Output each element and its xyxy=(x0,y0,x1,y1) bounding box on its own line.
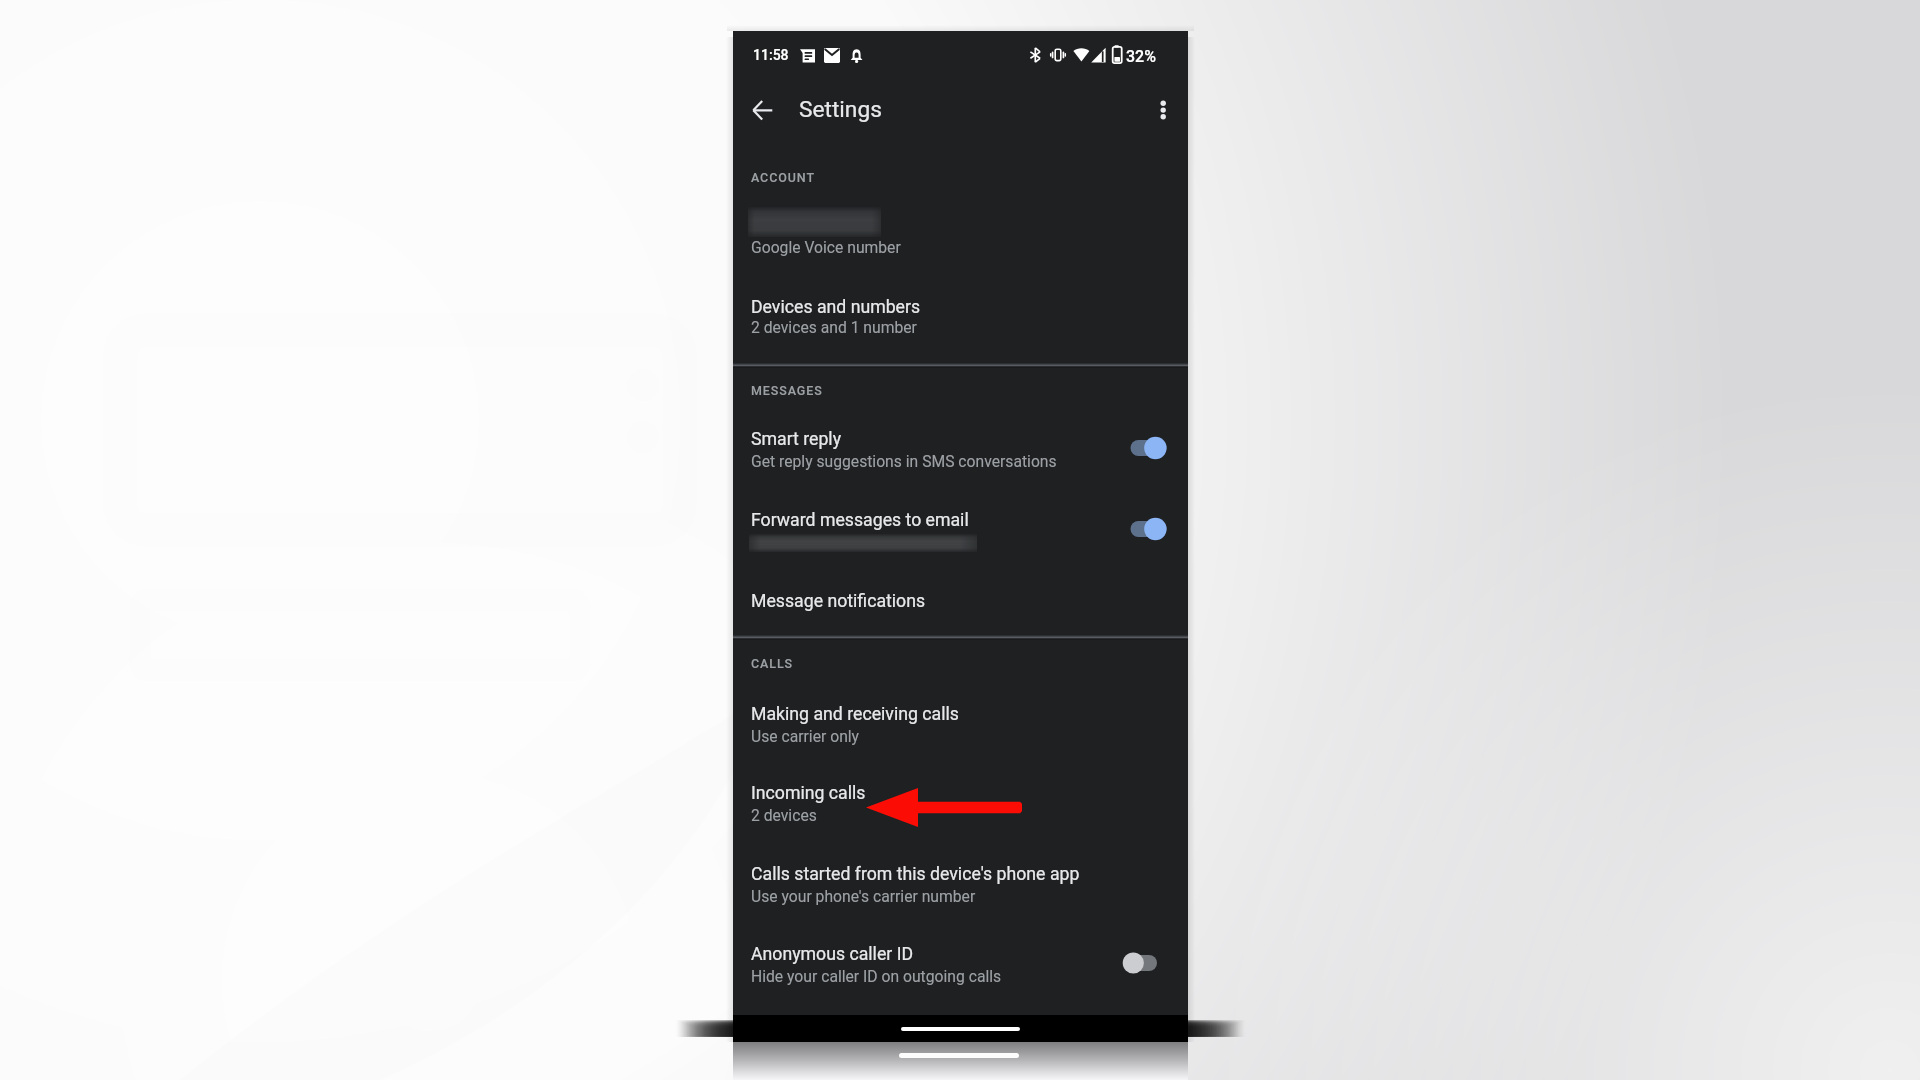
button[interactable]: Forward messages to email xyxy=(733,501,1188,561)
staticText: Devices and numbers xyxy=(751,297,921,318)
staticText: Google Voice number xyxy=(751,238,901,256)
button[interactable]: Message notifications xyxy=(733,582,1188,624)
staticText: 32% xyxy=(1126,47,1156,66)
staticText: Message notifications xyxy=(751,591,926,612)
staticText: Hide your caller ID on outgoing calls xyxy=(751,967,1002,985)
staticText: ACCOUNT xyxy=(751,170,815,185)
staticText: Incoming calls xyxy=(751,783,866,804)
button[interactable]: Making and receiving calls xyxy=(733,695,1188,753)
staticText: MESSAGES xyxy=(751,383,823,398)
staticText: 11:58 xyxy=(753,47,789,63)
staticText: Calls started from this device's phone a… xyxy=(751,864,1080,885)
button[interactable]: Incoming calls xyxy=(733,774,1188,832)
button[interactable]: More options xyxy=(1139,87,1187,135)
button[interactable]: Toggle, off xyxy=(1118,947,1172,979)
staticText: Use carrier only xyxy=(751,727,860,745)
button[interactable]: Calls started from this device's phone a… xyxy=(733,855,1188,913)
staticText: Forward messages to email xyxy=(751,510,969,531)
button[interactable]: Anonymous caller ID xyxy=(733,935,1188,993)
staticText: Get reply suggestions in SMS conversatio… xyxy=(751,452,1057,470)
staticText: Smart reply xyxy=(751,429,842,450)
staticText: 2 devices and 1 number xyxy=(751,318,917,336)
staticText: 2 devices xyxy=(751,806,817,824)
button[interactable]: Google Voice number xyxy=(733,200,1188,262)
staticText: CALLS xyxy=(751,656,794,671)
button[interactable]: Toggle, on xyxy=(1118,432,1172,464)
staticText: Anonymous caller ID xyxy=(751,944,914,965)
staticText: Making and receiving calls xyxy=(751,704,959,725)
other: Annotation arrow pointing at Incoming ca… xyxy=(866,787,1022,828)
button[interactable]: Toggle, on xyxy=(1118,513,1172,545)
button[interactable]: Smart reply xyxy=(733,420,1188,480)
staticText: Settings xyxy=(799,96,882,123)
button[interactable]: Navigate up xyxy=(739,86,787,134)
button[interactable]: Devices and numbers xyxy=(733,288,1188,346)
staticText: Use your phone's carrier number xyxy=(751,887,976,905)
